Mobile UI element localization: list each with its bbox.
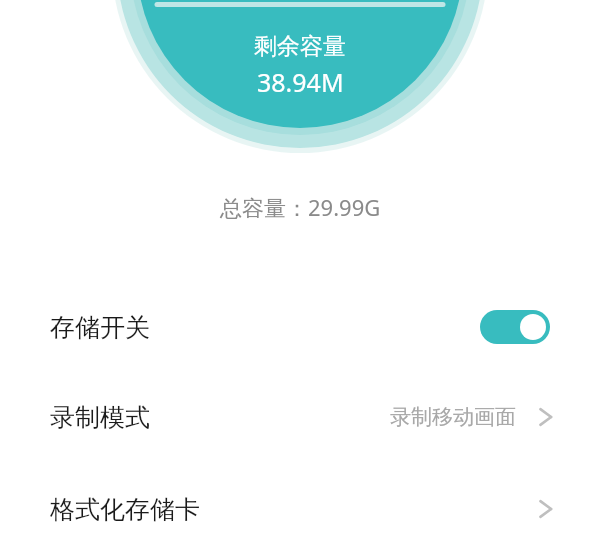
staticText: 剩余容量 bbox=[254, 32, 346, 61]
staticText: 存储开关 bbox=[50, 312, 480, 343]
staticText: 格式化存储卡 bbox=[50, 494, 538, 525]
button[interactable]: 存储开关 bbox=[0, 283, 600, 371]
other: Open bbox=[538, 495, 554, 523]
button[interactable]: Storage switch, on bbox=[480, 310, 550, 344]
button[interactable]: 录制模式 bbox=[0, 371, 600, 463]
button[interactable]: 格式化存储卡 bbox=[0, 463, 600, 547]
staticText: 录制移动画面 bbox=[390, 404, 516, 430]
other: Open bbox=[538, 403, 554, 431]
staticText: 录制模式 bbox=[50, 402, 390, 433]
staticText: 总容量：29.99G bbox=[220, 192, 381, 222]
staticText: 38.94M bbox=[257, 65, 344, 99]
